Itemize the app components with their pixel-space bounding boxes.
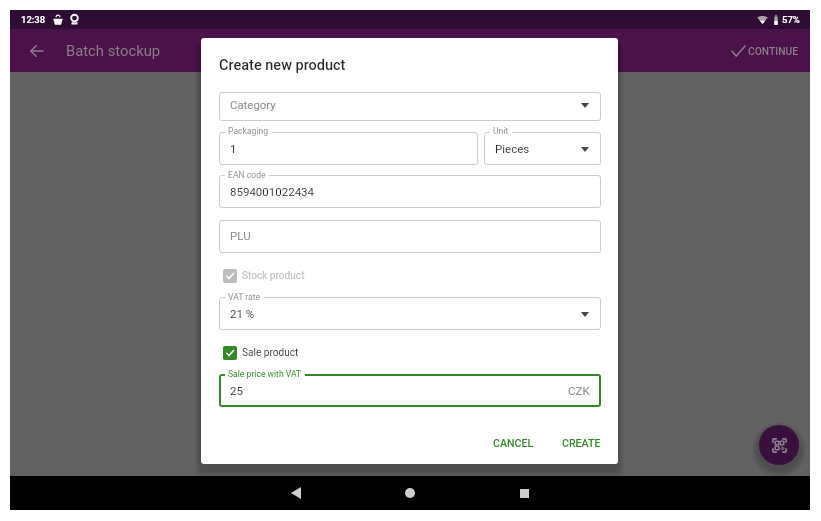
staticText: PLU (230, 229, 251, 242)
staticText: Packaging (228, 126, 269, 136)
staticText: Category (230, 98, 276, 111)
staticText: CONTINUE (748, 45, 799, 57)
button[interactable]: Category (219, 92, 601, 121)
staticText: Batch stockup (66, 42, 161, 59)
staticText: 25 (230, 384, 243, 397)
button[interactable]: Sale product (223, 343, 299, 362)
staticText: CREATE (562, 437, 601, 449)
button[interactable]: 25 (219, 374, 601, 407)
button[interactable]: Pieces (484, 132, 601, 165)
staticText: 1 (230, 142, 237, 155)
button[interactable]: 1 (219, 132, 478, 165)
staticText: Create new product (219, 57, 346, 74)
staticText: Stock product (242, 270, 305, 282)
button[interactable]: Scan barcode (759, 425, 799, 465)
staticText: Sale product (242, 347, 299, 359)
staticText: Sale price with VAT (228, 369, 302, 379)
staticText: 21 % (230, 307, 255, 320)
button[interactable]: PLU (219, 220, 601, 253)
button[interactable]: Home (353, 476, 467, 510)
button[interactable]: CANCEL (483, 430, 543, 456)
staticText: Pieces (495, 142, 530, 155)
button[interactable]: Stock product (223, 266, 305, 285)
staticText: 57% (782, 14, 800, 25)
button[interactable]: 8594001022434 (219, 175, 601, 208)
button[interactable]: Back (30, 35, 43, 67)
button[interactable]: CREATE (551, 430, 611, 456)
button[interactable]: Recents (467, 476, 581, 510)
staticText: Unit (493, 126, 509, 136)
staticText: VAT rate (228, 292, 261, 302)
staticText: EAN code (228, 170, 266, 180)
button[interactable]: Back (239, 476, 353, 510)
staticText: CANCEL (493, 437, 534, 449)
button[interactable]: 21 % (219, 297, 601, 330)
button[interactable]: CONTINUE (722, 29, 810, 72)
staticText: CZK (568, 384, 590, 397)
staticText: 12:38 (21, 14, 46, 25)
staticText: 8594001022434 (230, 185, 315, 198)
